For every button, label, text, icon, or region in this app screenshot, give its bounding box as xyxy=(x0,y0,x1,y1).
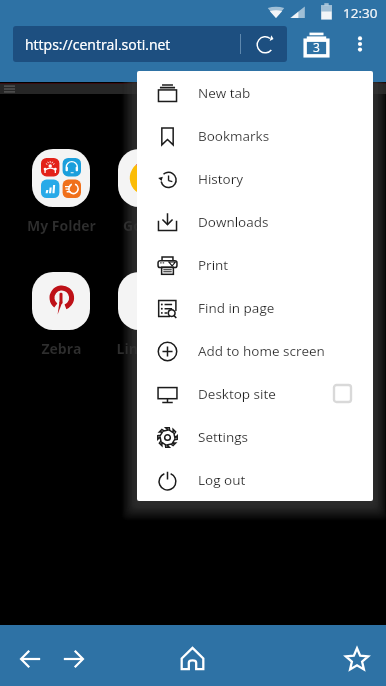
button[interactable]: More options xyxy=(340,24,380,64)
button[interactable]: Find in page xyxy=(137,286,373,329)
button[interactable]: Bookmarks xyxy=(334,636,379,681)
button[interactable]: Tabs: 3 open xyxy=(297,25,335,63)
button[interactable]: Home xyxy=(170,636,215,681)
button[interactable]: Google xyxy=(102,149,192,235)
button[interactable]: Downloads xyxy=(137,200,373,243)
button[interactable]: Log out xyxy=(137,458,373,501)
staticText: Zebra xyxy=(41,339,82,358)
button[interactable]: Print xyxy=(137,243,373,286)
staticText: https://central.soti.net xyxy=(25,35,171,54)
button[interactable] xyxy=(102,272,192,330)
button[interactable]: LinkedIn xyxy=(102,272,192,358)
staticText: 12:30 xyxy=(343,4,378,22)
staticText: Find in page xyxy=(198,299,275,317)
button[interactable]: https://central.soti.net xyxy=(13,26,287,62)
button[interactable]: Reload xyxy=(250,28,282,60)
button[interactable]: History xyxy=(137,157,373,200)
staticText: Print xyxy=(198,256,229,274)
button[interactable]: Desktop site xyxy=(137,372,373,415)
staticText: New tab xyxy=(198,84,251,102)
button[interactable] xyxy=(102,149,192,207)
button[interactable]: My Folder xyxy=(16,149,106,235)
button[interactable]: Back xyxy=(8,637,52,681)
staticText: Downloads xyxy=(198,213,269,231)
button[interactable] xyxy=(16,272,106,330)
button[interactable]: Zebra xyxy=(16,272,106,358)
staticText: LinkedIn xyxy=(116,339,178,358)
staticText: Google xyxy=(123,216,171,235)
button[interactable]: Forward xyxy=(51,637,95,681)
staticText: 3 xyxy=(313,39,320,55)
staticText: Desktop site xyxy=(198,385,276,403)
button[interactable]: New tab xyxy=(137,71,373,114)
staticText: Bookmarks xyxy=(198,127,270,145)
staticText: History xyxy=(198,170,244,188)
staticText: My Folder xyxy=(27,216,96,235)
staticText: Settings xyxy=(198,428,249,446)
button[interactable] xyxy=(16,149,106,207)
button[interactable]: Bookmarks xyxy=(137,114,373,157)
staticText: Add to home screen xyxy=(198,342,325,360)
staticText: Log out xyxy=(198,471,246,489)
button[interactable]: Add to home screen xyxy=(137,329,373,372)
button[interactable]: Settings xyxy=(137,415,373,458)
